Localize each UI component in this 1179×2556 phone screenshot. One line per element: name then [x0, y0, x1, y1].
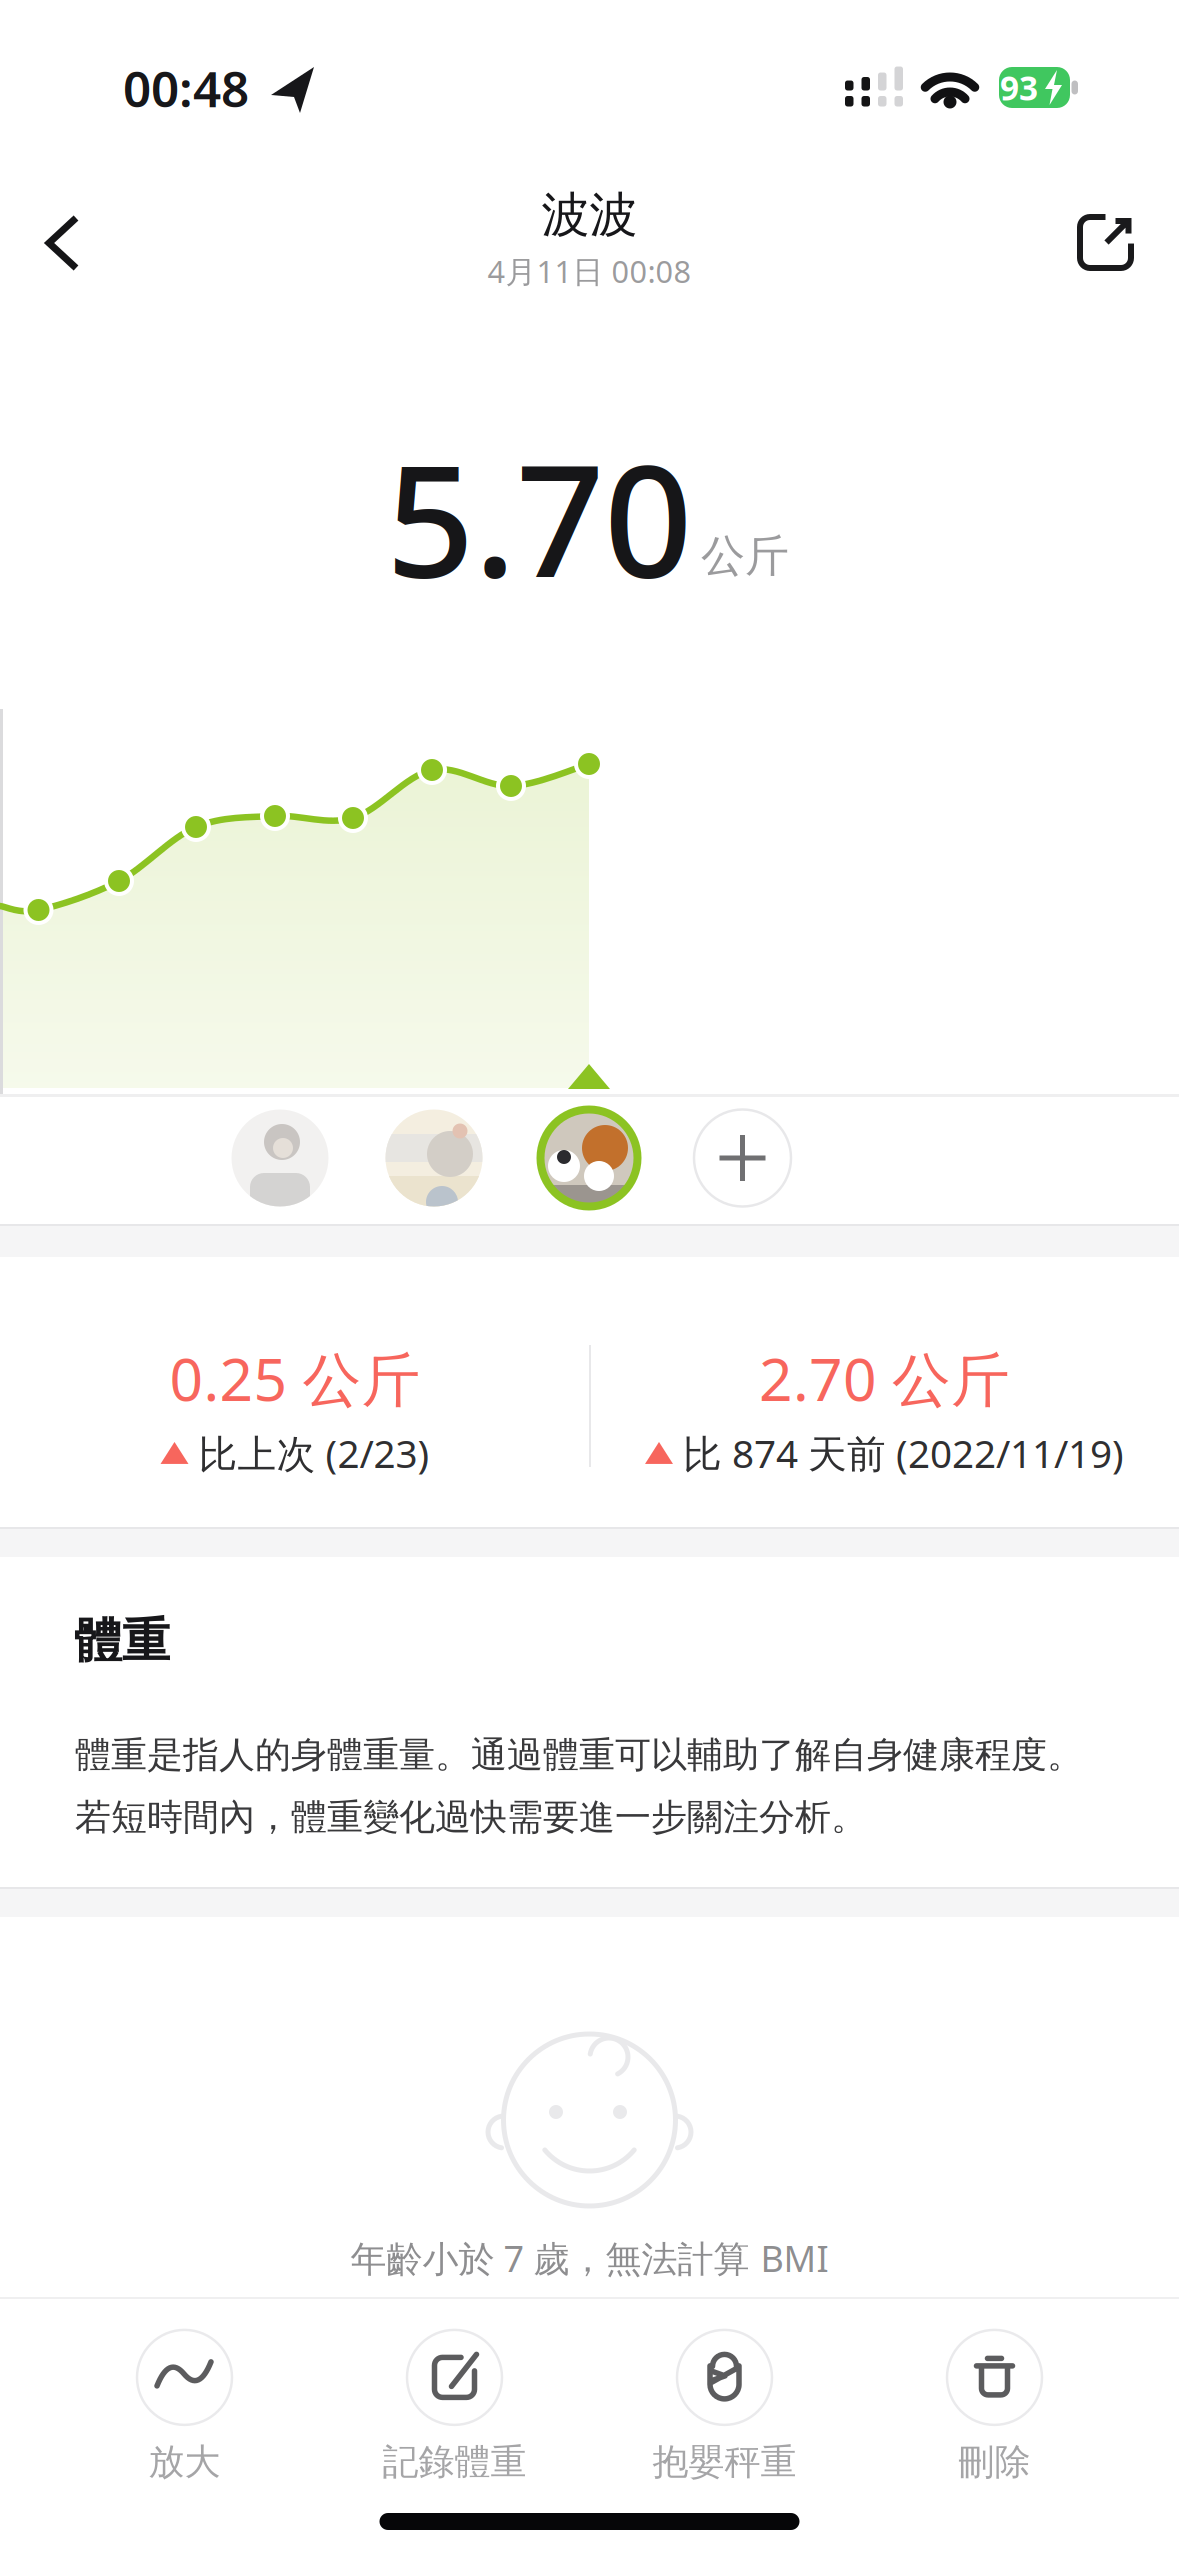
button[interactable]: Back [34, 205, 98, 281]
staticText: 2.70 公斤 [759, 1339, 1010, 1417]
button[interactable]: 波波 [538, 1107, 639, 1208]
button[interactable]: 抱嬰秤重 [652, 2330, 796, 2484]
staticText: 放大 [148, 2440, 220, 2484]
staticText: 波波 [541, 185, 637, 244]
button[interactable]: Add member [694, 1109, 791, 1206]
staticText: 年齡小於 7 歲，無法計算 BMI [350, 2234, 828, 2282]
button[interactable]: 放大 [137, 2330, 232, 2484]
button[interactable]: Share [1073, 210, 1137, 274]
staticText: 5.70 [386, 414, 692, 620]
staticText: 00:48 [123, 55, 249, 121]
staticText: 記錄體重 [382, 2440, 526, 2484]
button[interactable]: 記錄體重 [382, 2330, 526, 2484]
staticText: 公斤 [701, 529, 789, 583]
button[interactable]: Member 2 [385, 1109, 482, 1206]
staticText: 0.25 公斤 [169, 1339, 420, 1417]
staticText: 4月11日 00:08 [487, 251, 691, 291]
staticText: 比上次 (2/23) [198, 1427, 429, 1479]
staticText: 體重 [74, 1611, 170, 1670]
staticText: 抱嬰秤重 [652, 2440, 796, 2484]
staticText: 93 [1000, 65, 1038, 110]
staticText: 刪除 [958, 2440, 1030, 2484]
staticText: 若短時間內，體重變化過快需要進一步關注分析。 [75, 1795, 867, 1839]
button[interactable]: 刪除 [947, 2330, 1042, 2484]
staticText: 體重是指人的身體重量。通過體重可以輔助了解自身健康程度。 [75, 1733, 1083, 1777]
staticText: 比 874 天前 (2022/11/19) [683, 1427, 1124, 1479]
button[interactable]: Member 1 [231, 1109, 328, 1206]
